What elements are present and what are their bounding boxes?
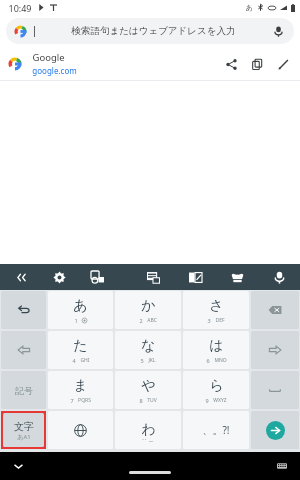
button[interactable]: か xyxy=(115,291,181,329)
button[interactable]: Voice search xyxy=(270,23,286,39)
button[interactable]: Key xyxy=(1,331,46,369)
staticText: Google xyxy=(32,51,65,64)
button[interactable]: Collapse xyxy=(11,267,31,287)
button[interactable]: は xyxy=(183,331,249,369)
staticText: た xyxy=(73,337,88,355)
staticText: 6 xyxy=(206,357,210,364)
button[interactable]: ま xyxy=(48,371,113,409)
button[interactable]: 検索語句またはウェブアドレスを入力 xyxy=(6,18,294,44)
staticText: か xyxy=(141,297,156,315)
staticText: WXYZ xyxy=(213,397,227,404)
button[interactable]: Handwriting xyxy=(87,267,107,287)
button[interactable]: Google xyxy=(0,47,300,80)
button[interactable]: わ xyxy=(115,411,181,449)
button[interactable]: さ xyxy=(183,291,249,329)
button[interactable]: Key xyxy=(251,331,299,369)
staticText: ま xyxy=(73,377,88,395)
staticText: あ xyxy=(73,297,88,315)
button[interactable]: あ xyxy=(48,291,113,329)
button[interactable]: Voice input xyxy=(269,267,289,287)
staticText: 1 xyxy=(74,317,78,324)
button[interactable]: Sticker xyxy=(227,267,247,287)
staticText: 7 xyxy=(70,397,74,404)
button[interactable]: Notes xyxy=(185,267,205,287)
staticText: ﾞﾟ ー xyxy=(142,438,154,445)
staticText: google.com xyxy=(32,65,77,76)
staticText: 3 xyxy=(207,317,211,324)
staticText: 、。?! xyxy=(202,423,230,437)
staticText: DEF xyxy=(215,317,225,324)
staticText: ABC xyxy=(147,317,157,324)
staticText: や xyxy=(141,377,156,395)
button[interactable]: や xyxy=(115,371,181,409)
staticText: JKL xyxy=(148,357,156,364)
staticText: 8 xyxy=(139,397,143,404)
button[interactable]: Back xyxy=(10,458,26,474)
button[interactable]: 記号 xyxy=(1,371,46,409)
button[interactable] xyxy=(48,411,113,449)
staticText: 10:49 xyxy=(8,2,32,14)
button[interactable]: た xyxy=(48,331,113,369)
button[interactable]: 、。?! xyxy=(183,411,249,449)
button[interactable]: な xyxy=(115,331,181,369)
button[interactable]: Edit xyxy=(272,53,294,75)
staticText: な xyxy=(141,337,156,355)
button[interactable]: Clipboard xyxy=(143,267,163,287)
staticText: 文字 xyxy=(14,420,34,433)
staticText: 9 xyxy=(205,397,209,404)
button[interactable]: Settings xyxy=(49,267,69,287)
staticText: 検索語句またはウェブアドレスを入力 xyxy=(37,25,270,37)
staticText: GHI xyxy=(80,357,90,364)
staticText: 2 xyxy=(139,317,143,324)
button[interactable]: ら xyxy=(183,371,249,409)
staticText: 4 xyxy=(72,357,76,364)
button[interactable]: Key xyxy=(251,291,299,329)
button[interactable]: Share xyxy=(220,53,242,75)
button[interactable]: Key xyxy=(251,371,299,409)
button[interactable]: 文字 xyxy=(3,413,44,447)
staticText: 記号 xyxy=(15,385,33,396)
staticText: さ xyxy=(209,297,224,315)
staticText: 5 xyxy=(140,357,144,364)
button[interactable]: Key xyxy=(1,291,46,329)
button[interactable]: Copy xyxy=(246,53,268,75)
staticText: TUV xyxy=(147,397,157,404)
staticText: あA1 xyxy=(17,433,31,441)
button[interactable]: Enter xyxy=(251,411,299,449)
button[interactable]: Switch keyboard xyxy=(274,458,290,474)
staticText: ら xyxy=(209,377,224,395)
staticText: あ xyxy=(245,3,253,12)
staticText: わ xyxy=(141,421,156,439)
staticText: は xyxy=(209,337,224,355)
staticText: MNO xyxy=(214,357,227,364)
staticText: PQRS xyxy=(78,397,91,404)
